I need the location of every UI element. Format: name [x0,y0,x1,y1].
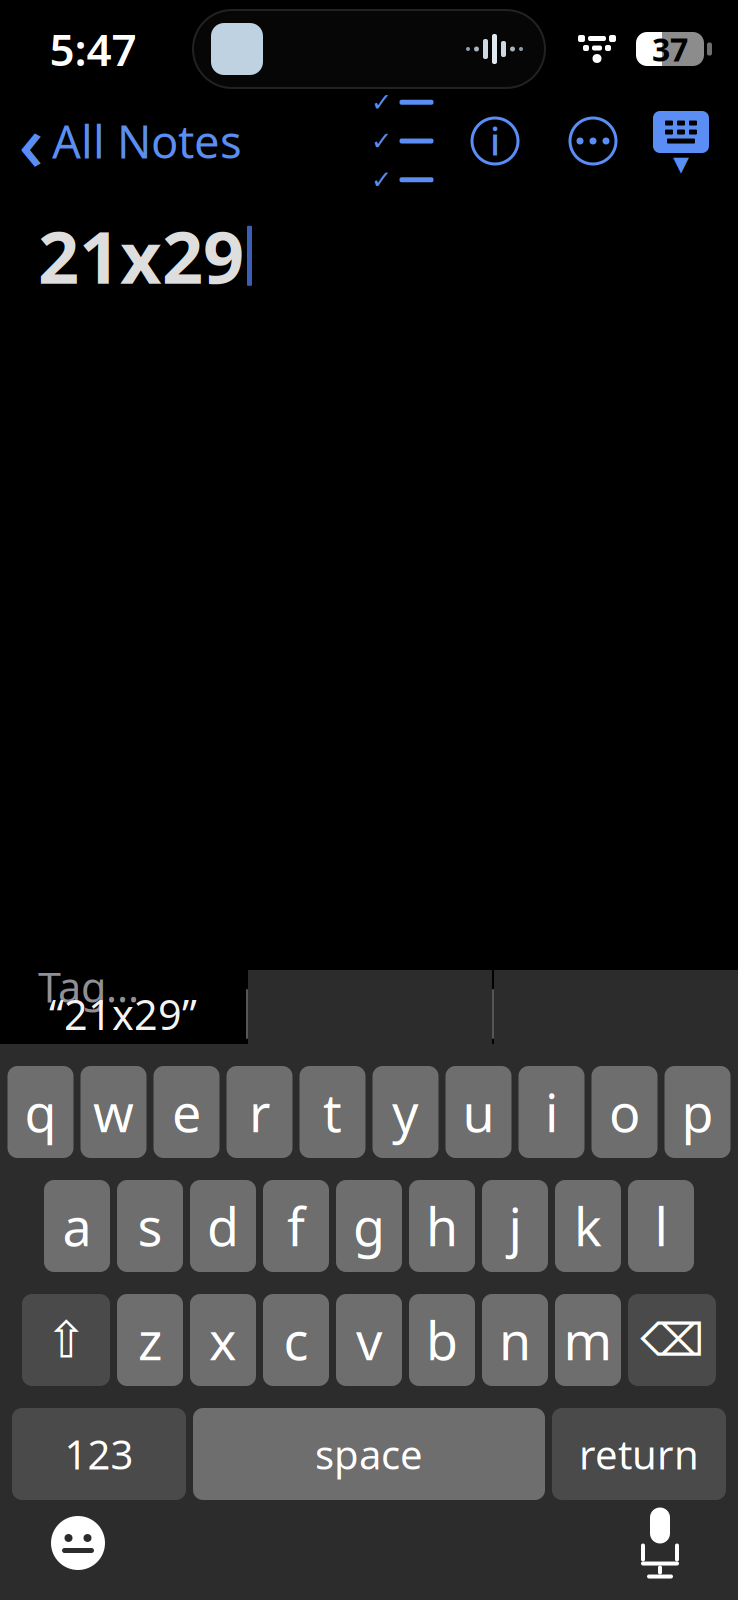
staticText: r [249,1077,270,1147]
staticText: l [654,1191,667,1261]
button[interactable]: n [482,1294,548,1386]
staticText: h [426,1191,458,1261]
button[interactable]: w [80,1066,146,1158]
button[interactable]: d [190,1180,256,1272]
button[interactable]: x [190,1294,256,1386]
staticText: 5:47 [49,20,136,78]
button[interactable]: c [263,1294,329,1386]
staticText: ▾ [673,145,689,181]
staticText: w [93,1077,134,1147]
button[interactable]: Delete [628,1294,716,1386]
button[interactable]: Dictate [608,1500,712,1586]
staticText: e [172,1077,201,1147]
button[interactable]: i [518,1066,584,1158]
button[interactable]: y [372,1066,438,1158]
staticText: v [356,1305,382,1375]
staticText: ✓ [371,165,392,194]
button[interactable]: 123 [12,1408,186,1500]
staticText: t [323,1077,342,1147]
staticText: i [545,1077,558,1147]
button[interactable]: r [226,1066,292,1158]
staticText: z [138,1305,162,1375]
button[interactable]: t [299,1066,365,1158]
staticText: Tag... [38,959,139,1014]
staticText: 21x29 [38,208,244,304]
button[interactable]: z [117,1294,183,1386]
button[interactable]: ‹ [0,99,242,183]
button[interactable]: m [555,1294,621,1386]
staticText: a [62,1191,91,1261]
staticText: s [137,1191,162,1261]
button[interactable]: a [44,1180,110,1272]
button[interactable]: Info [446,109,544,173]
button[interactable]: Hide Keyboard [642,109,720,173]
staticText: i [490,116,500,166]
staticText: “21x29” [49,987,197,1041]
button[interactable]: Checklist [360,109,446,173]
button[interactable]: f [263,1180,329,1272]
staticText: d [207,1191,239,1261]
button[interactable]: b [409,1294,475,1386]
staticText: ⌫ [640,1314,704,1366]
staticText: u [462,1077,494,1147]
button[interactable]: q [7,1066,73,1158]
button[interactable]: k [555,1180,621,1272]
staticText: k [574,1191,602,1261]
button[interactable]: o [591,1066,657,1158]
button[interactable]: g [336,1180,402,1272]
staticText: ‹ [18,90,43,192]
staticText: c [283,1305,308,1375]
button[interactable]: Shift [22,1294,110,1386]
button[interactable]: “21x29” [0,970,246,1058]
button[interactable]: e [153,1066,219,1158]
staticText: space [315,1427,423,1480]
button[interactable]: s [117,1180,183,1272]
button[interactable]: p [664,1066,730,1158]
staticText: y [392,1077,419,1147]
staticText: n [499,1305,531,1375]
staticText: 123 [64,1427,133,1480]
staticText: g [353,1191,385,1261]
staticText: return [579,1427,699,1480]
button[interactable]: return [552,1408,726,1500]
staticText: ✓ [371,88,392,117]
button[interactable]: j [482,1180,548,1272]
staticText: p [681,1077,713,1147]
staticText: o [609,1077,640,1147]
staticText: ✓ [371,127,392,155]
button[interactable]: h [409,1180,475,1272]
staticText: ⇧ [45,1311,87,1369]
staticText: 37 [652,28,688,70]
button[interactable]: Emoji [26,1500,130,1586]
staticText: j [508,1191,521,1261]
button[interactable]: l [628,1180,694,1272]
button[interactable]: u [445,1066,511,1158]
staticText: q [24,1077,56,1147]
button[interactable]: space [193,1408,545,1500]
staticText: b [426,1305,458,1375]
staticText: m [563,1305,612,1375]
button[interactable]: More [544,109,642,173]
staticText: f [287,1191,305,1261]
staticText: All Notes [52,111,242,171]
button[interactable]: v [336,1294,402,1386]
staticText: x [209,1305,237,1375]
